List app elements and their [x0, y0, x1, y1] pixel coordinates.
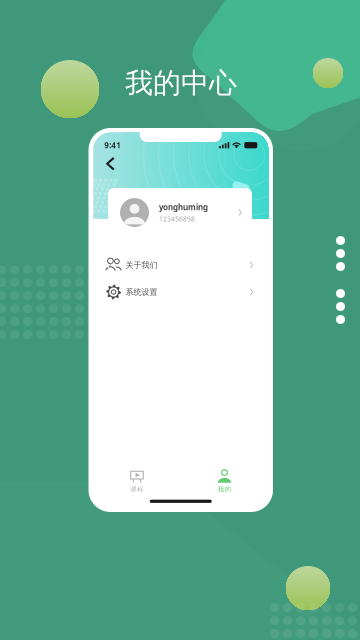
button[interactable]: Back: [101, 155, 119, 173]
button[interactable]: 我的: [181, 465, 268, 497]
staticText: 课程: [130, 485, 144, 493]
staticText: 9:41: [104, 140, 121, 150]
staticText: 我的: [217, 485, 231, 493]
button[interactable]: 课程: [93, 465, 181, 497]
staticText: 123456898: [159, 214, 195, 223]
staticText: 我的中心: [125, 66, 237, 100]
button[interactable]: 系统设置: [93, 279, 268, 305]
staticText: 系统设置: [126, 287, 158, 297]
button[interactable]: yonghuming: [108, 188, 252, 237]
staticText: yonghuming: [159, 202, 208, 212]
staticText: 关于我们: [126, 260, 158, 270]
button[interactable]: 关于我们: [93, 252, 268, 278]
